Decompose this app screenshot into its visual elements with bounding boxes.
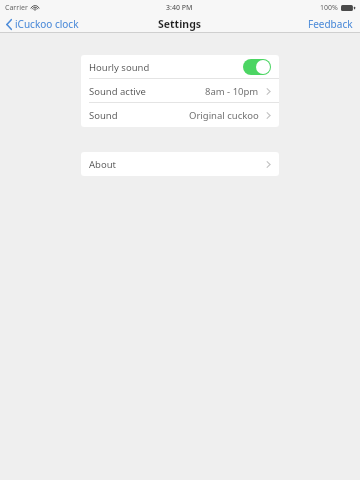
other: Back	[6, 19, 12, 30]
staticText: Sound active	[89, 85, 146, 98]
staticText: Feedback	[308, 17, 353, 31]
other: More	[266, 160, 271, 169]
staticText: 8am - 10pm	[205, 85, 259, 98]
staticText: Original cuckoo	[189, 109, 259, 122]
other: More	[266, 111, 271, 120]
staticText: Carrier	[5, 3, 28, 13]
staticText: Hourly sound	[89, 61, 150, 74]
staticText: 100%	[320, 3, 338, 13]
staticText: Sound	[89, 109, 118, 122]
staticText: About	[89, 158, 116, 171]
button[interactable]: Feedback	[305, 15, 356, 33]
button[interactable]: Back	[4, 15, 81, 33]
staticText: 3:40 PM	[166, 3, 193, 13]
button[interactable]: Hourly sound, on	[243, 59, 271, 75]
button[interactable]: Sound active	[81, 79, 279, 103]
staticText: iCuckoo clock	[15, 17, 79, 31]
staticText: Settings	[158, 17, 202, 31]
button[interactable]: Hourly sound	[81, 55, 279, 79]
other: More	[266, 87, 271, 96]
button[interactable]: Sound	[81, 103, 279, 127]
button[interactable]: About	[81, 152, 279, 176]
